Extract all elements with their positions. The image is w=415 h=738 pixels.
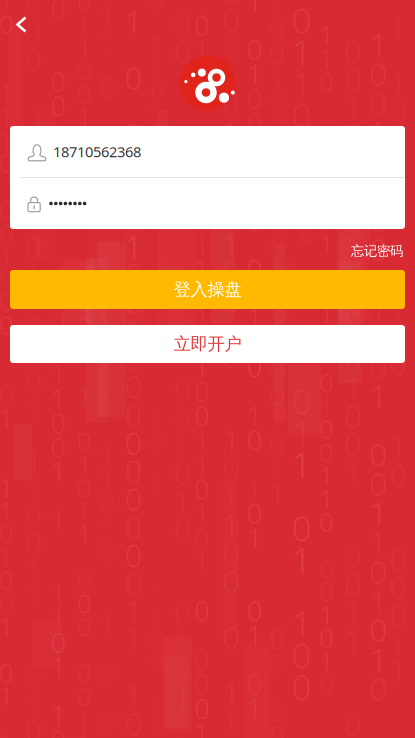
staticText: 0 (174, 32, 192, 72)
staticText: 0 (344, 115, 362, 155)
staticText: 0 (125, 254, 143, 295)
staticText: 0 (100, 289, 115, 325)
staticText: 0 (222, 280, 240, 321)
staticText: 0 (269, 109, 284, 144)
staticText: 1 (269, 304, 284, 339)
staticText: 18710562368 (53, 142, 141, 161)
button[interactable]: 忘记密码 (337, 242, 415, 260)
staticText: 0 (344, 423, 362, 464)
staticText: 1 (247, 691, 262, 726)
staticText: 0 (344, 143, 362, 184)
staticText: 0 (247, 105, 262, 141)
staticText: 1 (25, 147, 42, 186)
staticText: 1 (194, 252, 209, 287)
staticText: 1 (369, 491, 387, 534)
staticText: 0 (0, 215, 13, 249)
staticText: 1 (51, 601, 66, 636)
staticText: 1 (369, 23, 387, 65)
staticText: 1 (319, 644, 333, 678)
staticText: 0 (369, 608, 387, 651)
staticText: 0 (369, 550, 387, 592)
staticText: 0 (269, 377, 284, 412)
staticText: 0 (150, 336, 164, 368)
staticText: 0 (319, 435, 333, 469)
staticText: 1 (222, 112, 240, 152)
staticText: 1 (25, 442, 42, 481)
staticText: 0 (292, 188, 312, 234)
staticText: 1 (247, 300, 262, 336)
staticText: 1 (125, 226, 143, 267)
staticText: 1 (100, 119, 115, 154)
staticText: 1 (51, 381, 66, 416)
staticText: 0 (125, 58, 143, 98)
staticText: 0 (77, 308, 91, 342)
staticText: 1 (174, 256, 192, 297)
staticText: 0 (369, 345, 387, 387)
staticText: 0 (100, 241, 115, 276)
staticText: 0 (389, 90, 407, 130)
staticText: 0 (0, 7, 13, 40)
button[interactable]: 登入操盘 (10, 270, 405, 309)
staticText: 0 (369, 462, 387, 504)
staticText: 1 (0, 679, 13, 713)
staticText: 0 (51, 625, 66, 660)
staticText: 0 (125, 338, 143, 379)
staticText: 1 (194, 276, 209, 311)
staticText: 0 (194, 203, 209, 238)
staticText: 1 (344, 87, 362, 127)
staticText: 0 (319, 319, 333, 353)
staticText: 0 (369, 52, 387, 94)
staticText: 0 (319, 366, 333, 399)
staticText: 1 (247, 276, 262, 311)
staticText: 1 (150, 117, 164, 148)
button[interactable]: 立即开户 (10, 325, 405, 363)
staticText: 1 (247, 56, 262, 92)
staticText: 0 (77, 169, 91, 203)
staticText: 0 (194, 471, 209, 507)
staticText: 1 (77, 192, 91, 226)
staticText: 1 (389, 118, 407, 158)
staticText: 0 (0, 656, 13, 689)
staticText: 0 (150, 248, 164, 280)
button[interactable]: Back (0, 8, 40, 41)
staticText: 0 (222, 561, 240, 601)
staticText: 0 (319, 64, 333, 98)
staticText: 1 (247, 398, 262, 433)
staticText: 1 (344, 283, 362, 324)
staticText: 0 (125, 394, 143, 435)
staticText: 0 (222, 617, 240, 657)
